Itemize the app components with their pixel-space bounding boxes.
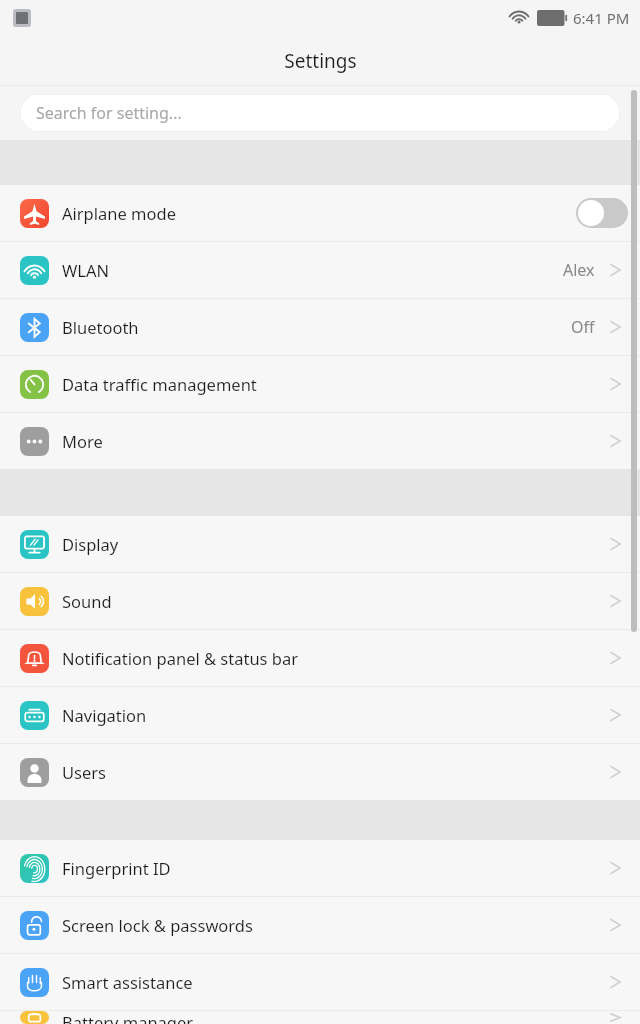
staticText: More (62, 430, 609, 452)
button[interactable]: More (0, 413, 640, 469)
button[interactable]: Battery manager (0, 1011, 640, 1024)
staticText: Screen lock & passwords (62, 914, 609, 936)
staticText: Display (62, 533, 609, 555)
button[interactable]: Display (0, 516, 640, 572)
button[interactable]: Notification panel & status bar (0, 630, 640, 686)
staticText: Navigation (62, 704, 609, 726)
button[interactable]: Airplane mode toggle (576, 198, 628, 228)
button[interactable]: Bluetooth (0, 299, 640, 355)
button[interactable]: Users (0, 744, 640, 800)
staticText: Airplane mode (62, 202, 576, 224)
staticText: Bluetooth (62, 316, 571, 338)
staticText: Alex (563, 259, 595, 281)
staticText: 6:41 PM (573, 8, 630, 28)
button[interactable]: Search for setting... (20, 94, 620, 132)
button[interactable]: Smart assistance (0, 954, 640, 1010)
staticText: Battery manager (62, 1011, 609, 1024)
staticText: Smart assistance (62, 971, 609, 993)
staticText: Settings (284, 48, 357, 74)
button[interactable]: Screen lock & passwords (0, 897, 640, 953)
button[interactable]: Fingerprint ID (0, 840, 640, 896)
staticText: Data traffic management (62, 373, 609, 395)
staticText: Sound (62, 590, 609, 612)
staticText: Fingerprint ID (62, 857, 609, 879)
button[interactable]: Navigation (0, 687, 640, 743)
staticText: Off (571, 316, 595, 338)
staticText: Users (62, 761, 609, 783)
button[interactable]: Airplane mode (0, 185, 640, 241)
staticText: Search for setting... (36, 102, 182, 124)
button[interactable]: WLAN (0, 242, 640, 298)
staticText: WLAN (62, 259, 563, 281)
button[interactable]: Data traffic management (0, 356, 640, 412)
staticText: Notification panel & status bar (62, 647, 609, 669)
button[interactable]: Sound (0, 573, 640, 629)
